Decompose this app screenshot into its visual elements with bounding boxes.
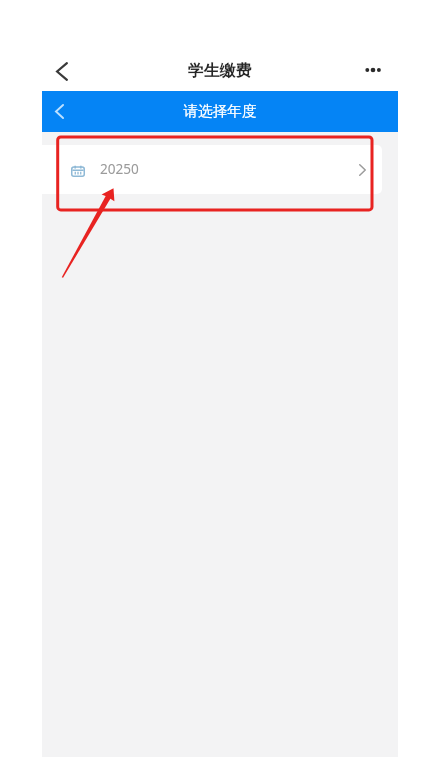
button[interactable]: Back xyxy=(46,98,72,124)
staticText: 20250 xyxy=(100,159,139,178)
staticText: 学生缴费 xyxy=(4,61,431,81)
staticText: 请选择年度 xyxy=(42,102,398,120)
button[interactable]: Back xyxy=(46,55,78,87)
button[interactable]: More options xyxy=(358,55,388,85)
button[interactable]: 20250 xyxy=(42,145,382,194)
